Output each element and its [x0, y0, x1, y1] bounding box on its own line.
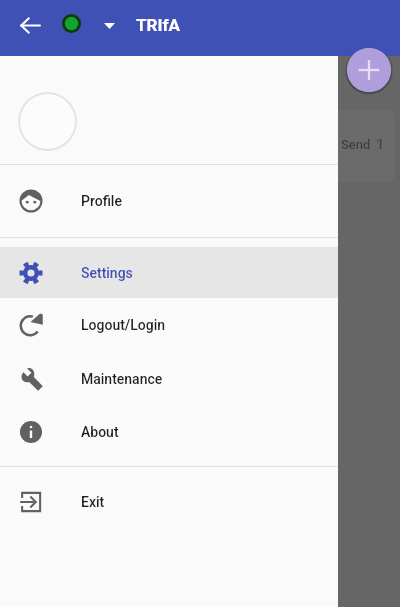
button[interactable]: Online status: [53, 5, 90, 42]
button[interactable]: Maintenance: [0, 352, 338, 405]
button[interactable]: Logout/Login: [0, 298, 338, 352]
button[interactable]: Settings: [0, 247, 338, 298]
button[interactable]: Back: [8, 3, 53, 48]
staticText: Profile: [81, 193, 122, 209]
staticText: Logout/Login: [81, 317, 166, 333]
button[interactable]: Exit: [0, 475, 338, 529]
staticText: Exit: [81, 494, 105, 510]
button[interactable]: Profile: [0, 173, 338, 229]
staticText: Settings: [81, 265, 133, 281]
staticText: About: [81, 424, 119, 440]
button[interactable]: Send 'l: [335, 110, 395, 182]
staticText: Maintenance: [81, 371, 163, 387]
button[interactable]: Change status: [93, 9, 126, 42]
button[interactable]: About: [0, 405, 338, 458]
staticText: Send 'l: [341, 137, 383, 152]
button[interactable]: Add contact: [345, 46, 393, 94]
staticText: TRIfA: [136, 15, 180, 35]
